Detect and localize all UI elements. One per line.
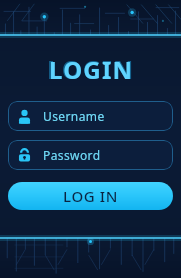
staticText: LOGIN: [47, 52, 135, 86]
button[interactable]: Lock: [8, 140, 173, 170]
staticText: Username: [43, 108, 105, 124]
button[interactable]: LOG IN: [8, 182, 173, 210]
staticText: LOGIN: [49, 53, 134, 86]
button[interactable]: User: [8, 101, 173, 131]
staticText: LOG IN: [63, 186, 118, 206]
other: User: [17, 109, 32, 124]
other: Lock: [17, 148, 32, 163]
staticText: Password: [43, 147, 101, 163]
